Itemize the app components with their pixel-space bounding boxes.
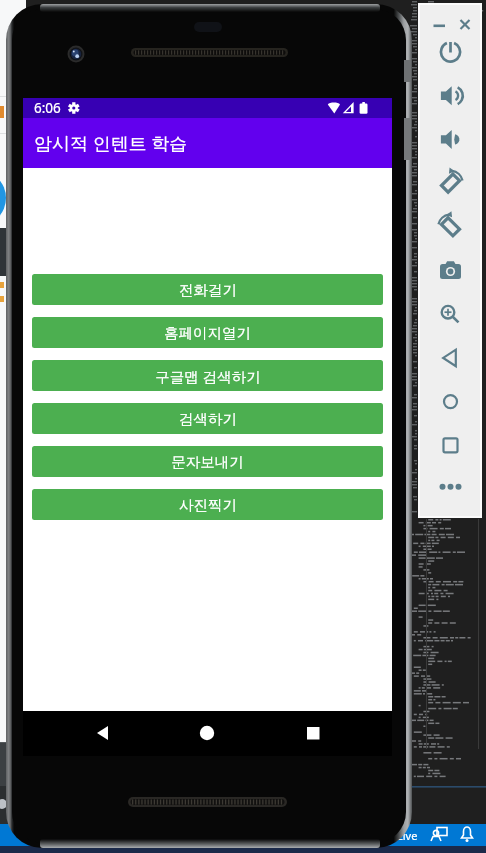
button[interactable]: Power (435, 36, 467, 68)
button[interactable]: Zoom in (435, 298, 467, 330)
button[interactable]: 검색하기 (32, 403, 383, 434)
button[interactable]: Take screenshot (435, 255, 467, 287)
button[interactable]: Home (435, 386, 467, 418)
button[interactable]: Home (183, 711, 233, 756)
button[interactable]: Rotate right (435, 211, 467, 243)
button[interactable]: 구글맵 검색하기 (32, 360, 383, 391)
staticText: 검색하기 (179, 410, 237, 428)
button[interactable]: Minimize (428, 17, 450, 39)
staticText: 전화걸기 (179, 281, 237, 299)
button[interactable]: 문자보내기 (32, 446, 383, 477)
button[interactable]: Volume up (435, 80, 467, 112)
button[interactable]: Back (78, 711, 128, 756)
button[interactable]: Rotate left (435, 167, 467, 199)
staticText: Live (397, 828, 418, 843)
staticText: 암시적 인텐트 학습 (34, 131, 188, 156)
staticText: 구글맵 검색하기 (155, 366, 261, 386)
button[interactable]: 사진찍기 (32, 489, 383, 520)
button[interactable]: Recent apps (435, 429, 467, 461)
button[interactable]: 홈페이지열기 (32, 317, 383, 348)
button[interactable]: More (435, 471, 467, 503)
button[interactable]: 전화걸기 (32, 274, 383, 305)
staticText: 홈페이지열기 (164, 324, 251, 342)
staticText: 문자보내기 (171, 453, 244, 471)
staticText: 사진찍기 (179, 496, 237, 514)
button[interactable]: Volume down (435, 123, 467, 155)
staticText: 6:06 (34, 99, 61, 117)
button[interactable]: Back (435, 342, 467, 374)
button[interactable]: Recent apps (288, 711, 338, 756)
button[interactable]: Close (454, 17, 476, 39)
